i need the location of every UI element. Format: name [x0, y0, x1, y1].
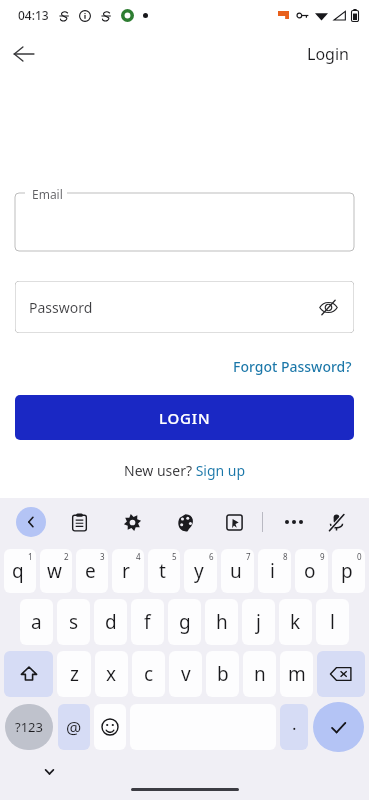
button[interactable]: i: [258, 549, 291, 593]
staticText: y: [194, 558, 204, 584]
button[interactable]: Shift: [4, 651, 53, 697]
button[interactable]: c: [132, 651, 165, 697]
staticText: New user? Sign up: [124, 461, 246, 480]
staticText: 7: [246, 551, 251, 562]
staticText: 5: [172, 551, 177, 562]
staticText: .: [292, 712, 297, 735]
button[interactable]: Show password: [312, 291, 344, 323]
button[interactable]: u: [221, 549, 254, 593]
staticText: c: [144, 661, 154, 687]
button[interactable]: @: [58, 704, 90, 750]
button[interactable]: q: [4, 549, 36, 593]
staticText: e: [85, 558, 96, 584]
staticText: Login: [307, 43, 349, 65]
button[interactable]: h: [205, 599, 238, 645]
button[interactable]: z: [57, 651, 91, 697]
staticText: 0: [357, 551, 362, 562]
staticText: 2: [64, 551, 69, 562]
staticText: ?123: [15, 718, 43, 736]
button[interactable]: r: [112, 549, 144, 593]
button[interactable]: LOGIN: [15, 395, 354, 440]
staticText: LOGIN: [159, 408, 211, 428]
staticText: d: [105, 609, 117, 635]
button[interactable]: a: [20, 599, 53, 645]
staticText: w: [47, 558, 62, 584]
button[interactable]: Hide keyboard: [36, 758, 62, 784]
button[interactable]: o: [295, 549, 328, 593]
button[interactable]: k: [279, 599, 312, 645]
button[interactable]: Theme: [168, 505, 202, 539]
button[interactable]: m: [280, 651, 313, 697]
staticText: l: [330, 609, 335, 635]
staticText: Email: [32, 186, 63, 202]
staticText: b: [217, 661, 229, 687]
button[interactable]: v: [169, 651, 202, 697]
button[interactable]: l: [316, 599, 349, 645]
staticText: k: [290, 609, 301, 635]
staticText: 04:13: [18, 7, 49, 23]
button[interactable]: Settings: [115, 505, 149, 539]
button[interactable]: n: [243, 651, 276, 697]
staticText: f: [144, 609, 151, 635]
staticText: a: [31, 609, 42, 635]
button[interactable]: New user? Sign up: [0, 461, 369, 480]
button[interactable]: t: [148, 549, 180, 593]
button[interactable]: Clipboard: [62, 505, 96, 539]
staticText: i: [270, 558, 275, 584]
staticText: 4: [136, 551, 141, 562]
staticText: q: [12, 558, 24, 584]
button[interactable]: p: [332, 549, 365, 593]
button[interactable]: More options: [277, 505, 311, 539]
button[interactable]: g: [168, 599, 201, 645]
staticText: 3: [100, 551, 105, 562]
button[interactable]: b: [206, 651, 239, 697]
staticText: p: [341, 558, 353, 584]
button[interactable]: x: [95, 651, 128, 697]
staticText: x: [106, 661, 117, 687]
staticText: t: [159, 558, 166, 584]
staticText: r: [122, 558, 130, 584]
staticText: g: [179, 609, 191, 635]
button[interactable]: f: [131, 599, 164, 645]
staticText: s: [69, 609, 79, 635]
button[interactable]: Sticker: [217, 505, 251, 539]
staticText: 1: [28, 551, 33, 562]
button[interactable]: Previous: [16, 507, 46, 537]
button[interactable]: Forgot Password?: [231, 355, 354, 378]
button[interactable]: d: [94, 599, 127, 645]
staticText: 6: [209, 551, 214, 562]
button[interactable]: y: [184, 549, 217, 593]
button[interactable]: Password: [15, 281, 354, 333]
button[interactable]: j: [242, 599, 275, 645]
staticText: @: [66, 716, 82, 739]
button[interactable]: ?123: [5, 704, 53, 750]
staticText: j: [256, 609, 261, 635]
staticText: h: [216, 609, 228, 635]
staticText: n: [254, 661, 266, 687]
button[interactable]: Back: [4, 34, 44, 74]
staticText: m: [288, 661, 306, 687]
staticText: u: [230, 558, 242, 584]
staticText: o: [304, 558, 316, 584]
button[interactable]: Enter: [313, 702, 364, 752]
button[interactable]: w: [40, 549, 72, 593]
button[interactable]: Backspace: [317, 651, 365, 697]
button[interactable]: e: [76, 549, 108, 593]
button[interactable]: Emoji: [94, 704, 126, 750]
button[interactable]: Voice input off: [319, 505, 353, 539]
button[interactable]: s: [57, 599, 90, 645]
staticText: 8: [283, 551, 288, 562]
staticText: 9: [320, 551, 325, 562]
staticText: Password: [29, 298, 93, 317]
staticText: z: [70, 661, 79, 687]
button[interactable]: .: [280, 704, 308, 750]
staticText: v: [181, 661, 191, 687]
staticText: Forgot Password?: [233, 357, 352, 376]
